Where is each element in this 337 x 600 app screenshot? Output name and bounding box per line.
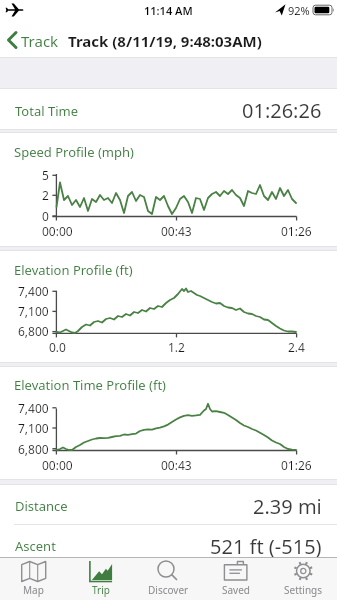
staticText: Saved xyxy=(222,583,250,597)
staticText: Speed Profile (mph) xyxy=(14,143,134,161)
staticText: Elevation Profile (ft) xyxy=(14,261,133,279)
staticText: 7,100 xyxy=(18,420,49,436)
button[interactable] xyxy=(0,525,337,557)
staticText: 2 xyxy=(42,187,49,203)
staticText: 2.39 mi xyxy=(253,493,322,520)
button[interactable]: Trip xyxy=(67,557,134,600)
staticText: 7,400 xyxy=(18,400,49,416)
button[interactable]: Map xyxy=(0,557,67,600)
staticText: 00:00 xyxy=(42,457,73,473)
staticText: Distance xyxy=(15,497,68,515)
button[interactable]: Saved xyxy=(202,557,269,600)
staticText: 01:26 xyxy=(281,223,312,239)
staticText: Track xyxy=(21,31,59,51)
staticText: 00:43 xyxy=(161,223,192,239)
staticText: 2.4 xyxy=(288,339,305,355)
button[interactable] xyxy=(0,485,337,524)
button[interactable] xyxy=(0,89,337,129)
staticText: 5 xyxy=(42,167,49,183)
staticText: Trip xyxy=(92,583,110,597)
staticText: 521 ft (-515) xyxy=(210,533,322,560)
staticText: 01:26 xyxy=(281,457,312,473)
staticText: 01:26:26 xyxy=(242,97,322,124)
button[interactable] xyxy=(6,28,66,52)
staticText: 0 xyxy=(42,208,49,224)
staticText: 6,800 xyxy=(18,441,49,457)
staticText: 00:43 xyxy=(161,457,192,473)
staticText: 7,100 xyxy=(18,303,49,319)
staticText: 11:14 AM xyxy=(144,3,193,18)
button[interactable]: Settings xyxy=(270,557,337,600)
staticText: Map xyxy=(23,583,44,597)
staticText: Settings xyxy=(284,583,323,597)
staticText: 0.0 xyxy=(49,339,66,355)
staticText: Total Time xyxy=(15,102,78,120)
staticText: Discover xyxy=(148,583,189,597)
staticText: Elevation Time Profile (ft) xyxy=(14,376,167,394)
staticText: Ascent xyxy=(15,537,56,555)
staticText: Track (8/11/19, 9:48:03AM) xyxy=(68,31,262,51)
staticText: 7,400 xyxy=(18,283,49,299)
button[interactable]: Discover xyxy=(135,557,202,600)
staticText: 00:00 xyxy=(42,223,73,239)
staticText: 92% xyxy=(288,3,310,18)
staticText: 6,800 xyxy=(18,323,49,339)
staticText: 1.2 xyxy=(168,339,185,355)
